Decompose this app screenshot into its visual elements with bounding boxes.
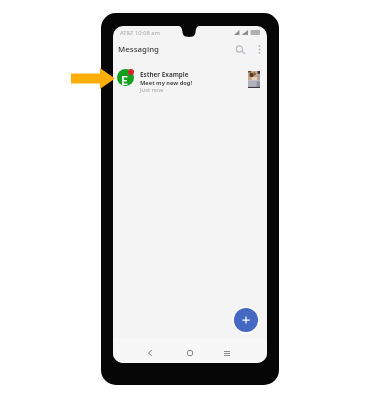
button[interactable]: New conversation	[234, 308, 258, 332]
button[interactable]: More options	[251, 41, 267, 57]
button[interactable]: Search	[231, 40, 249, 58]
staticText: Messaging	[118, 44, 159, 55]
button[interactable]: E	[113, 61, 267, 91]
button[interactable]: Back	[140, 341, 160, 363]
button[interactable]: Recent apps	[217, 341, 237, 363]
staticText: Esther Example	[140, 70, 189, 79]
staticText: AT&T 10:08 am	[120, 29, 161, 37]
staticText: Meet my new dog!	[140, 79, 193, 87]
button[interactable]: Home	[180, 341, 200, 363]
staticText: E	[121, 72, 128, 89]
staticText: Just now	[140, 86, 164, 94]
